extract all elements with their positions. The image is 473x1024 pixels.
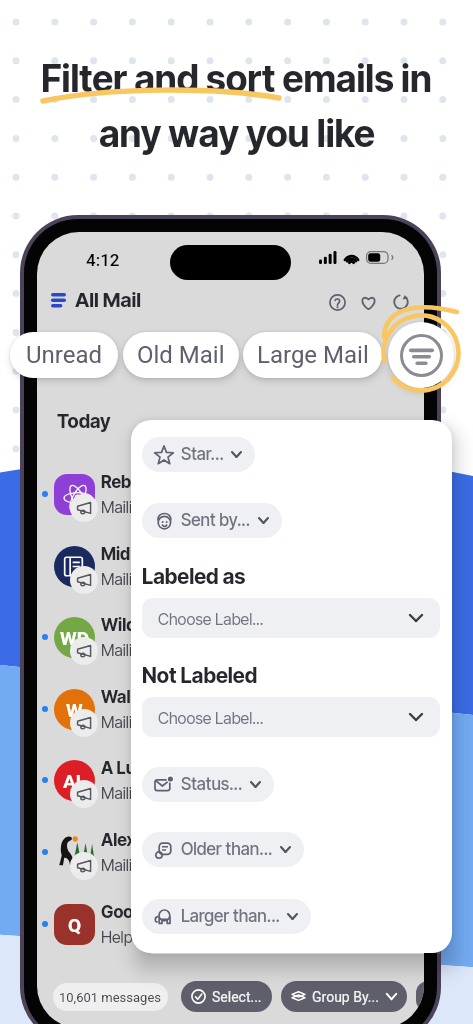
staticText: Select... — [212, 989, 262, 1005]
staticText: Google — [101, 902, 157, 923]
staticText: Large Mail — [257, 341, 369, 369]
staticText: Star... — [181, 444, 224, 465]
staticText: Mailing list — [101, 640, 173, 659]
staticText: Mailing list — [101, 497, 173, 516]
staticText: Larger than... — [181, 906, 280, 927]
button[interactable]: Q — [37, 889, 424, 959]
staticText: A Lumin — [101, 758, 165, 779]
button[interactable]: 10,601 messages — [53, 983, 168, 1011]
staticText: Mailing list — [101, 569, 173, 588]
button[interactable]: Status... — [142, 767, 274, 802]
staticText: Choose Label... — [158, 609, 264, 628]
button[interactable]: Refresh — [386, 287, 416, 317]
staticText: 4:12 — [86, 250, 120, 270]
staticText: Mailing — [101, 855, 150, 874]
staticText: any way you like — [99, 111, 375, 156]
button[interactable]: Midnight — [37, 531, 424, 601]
button[interactable]: WD — [37, 602, 424, 672]
staticText: Sent by... — [181, 510, 251, 531]
staticText: Mailing list — [101, 712, 173, 731]
button[interactable]: AL — [37, 745, 424, 815]
button[interactable]: Choose Label... — [142, 697, 440, 737]
staticText: Old Mail — [137, 341, 225, 369]
staticText: Today — [57, 410, 111, 433]
button[interactable]: Select... — [181, 981, 272, 1012]
staticText: Status... — [181, 774, 243, 795]
button[interactable]: Old Mail — [123, 332, 239, 378]
staticText: Group By... — [312, 989, 379, 1005]
staticText: Help — [101, 927, 133, 946]
staticText: Walmart — [101, 687, 168, 708]
button[interactable]: All Mail — [51, 288, 142, 312]
button[interactable]: Star... — [142, 437, 255, 472]
button[interactable]: Rebecca — [37, 459, 424, 529]
button[interactable]: Alexa — [37, 817, 424, 887]
staticText: Filter and sort emails in — [41, 56, 432, 101]
staticText: Q — [68, 914, 82, 936]
button[interactable]: More — [416, 981, 424, 1012]
staticText: 10,601 messages — [59, 990, 162, 1005]
button[interactable]: Large Mail — [243, 332, 382, 378]
staticText: AL — [63, 770, 87, 792]
staticText: Unread — [26, 341, 103, 369]
button[interactable]: Larger than... — [142, 899, 311, 934]
button[interactable]: Group By... — [281, 981, 407, 1012]
button[interactable]: W — [37, 674, 424, 744]
staticText: Not Labeled — [142, 663, 258, 688]
button[interactable]: Filter — [388, 322, 454, 388]
staticText: Labeled as — [142, 564, 246, 589]
button[interactable]: Help — [322, 287, 352, 317]
staticText: Midnight — [101, 544, 171, 565]
staticText: All Mail — [75, 288, 142, 312]
staticText: Rebecca — [101, 472, 169, 493]
staticText: Mailing list — [101, 783, 173, 802]
staticText: W — [66, 699, 83, 721]
staticText: WD — [60, 627, 89, 649]
staticText: Choose Label... — [158, 708, 264, 727]
button[interactable]: Older than... — [142, 832, 304, 867]
staticText: Alexa — [101, 830, 145, 851]
staticText: Older than... — [181, 839, 273, 860]
staticText: Wildlife — [101, 615, 160, 636]
button[interactable]: Unread — [10, 332, 118, 378]
button[interactable]: Choose Label... — [142, 598, 440, 638]
button[interactable]: Sent by... — [142, 503, 282, 538]
button[interactable]: Favorites — [353, 287, 383, 317]
